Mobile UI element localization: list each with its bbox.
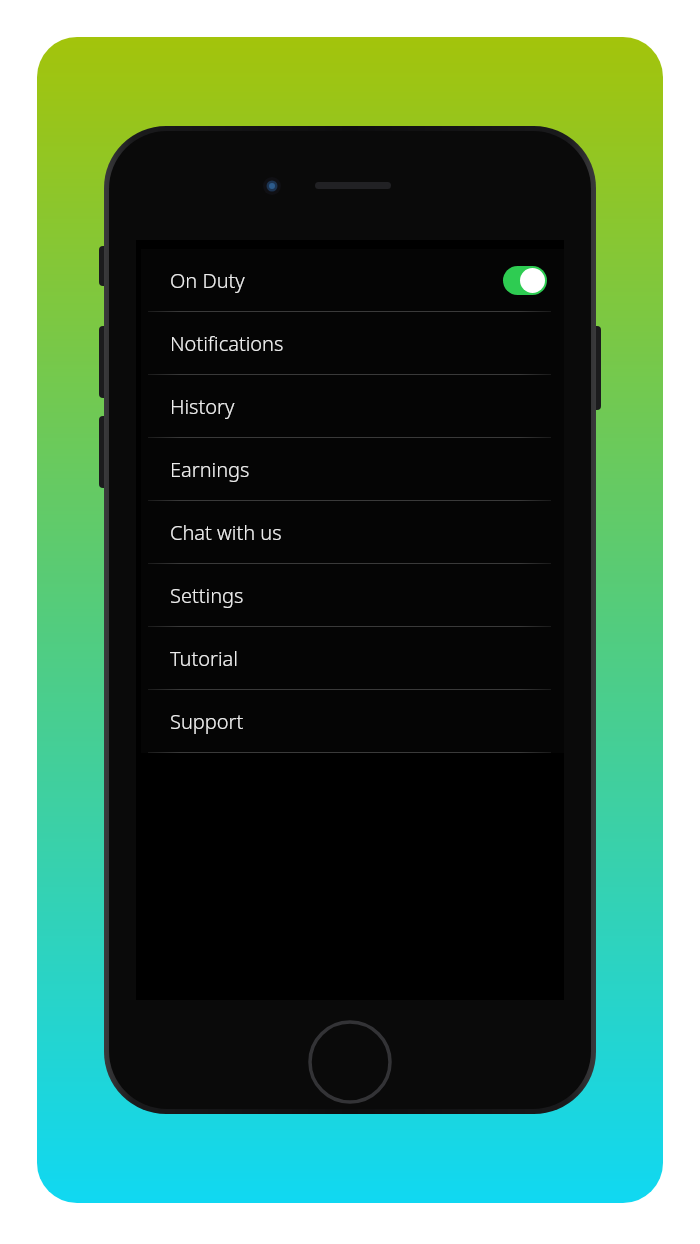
staticText: Notifications (170, 330, 284, 357)
button[interactable]: Notifications (141, 312, 564, 374)
staticText: Support (170, 708, 244, 735)
staticText: Tutorial (170, 645, 238, 672)
button[interactable]: Earnings (141, 438, 564, 500)
button[interactable]: History (141, 375, 564, 437)
button[interactable]: Chat with us (141, 501, 564, 563)
staticText: Settings (170, 582, 244, 609)
button[interactable]: Home (308, 1020, 392, 1104)
staticText: Chat with us (170, 519, 282, 546)
button[interactable]: On Duty (141, 249, 564, 311)
button[interactable]: Tutorial (141, 627, 564, 689)
button[interactable]: On Duty toggle (503, 266, 547, 295)
button[interactable]: Support (141, 690, 564, 752)
staticText: Earnings (170, 456, 250, 483)
button[interactable]: Settings (141, 564, 564, 626)
staticText: History (170, 393, 235, 420)
staticText: On Duty (170, 267, 245, 294)
